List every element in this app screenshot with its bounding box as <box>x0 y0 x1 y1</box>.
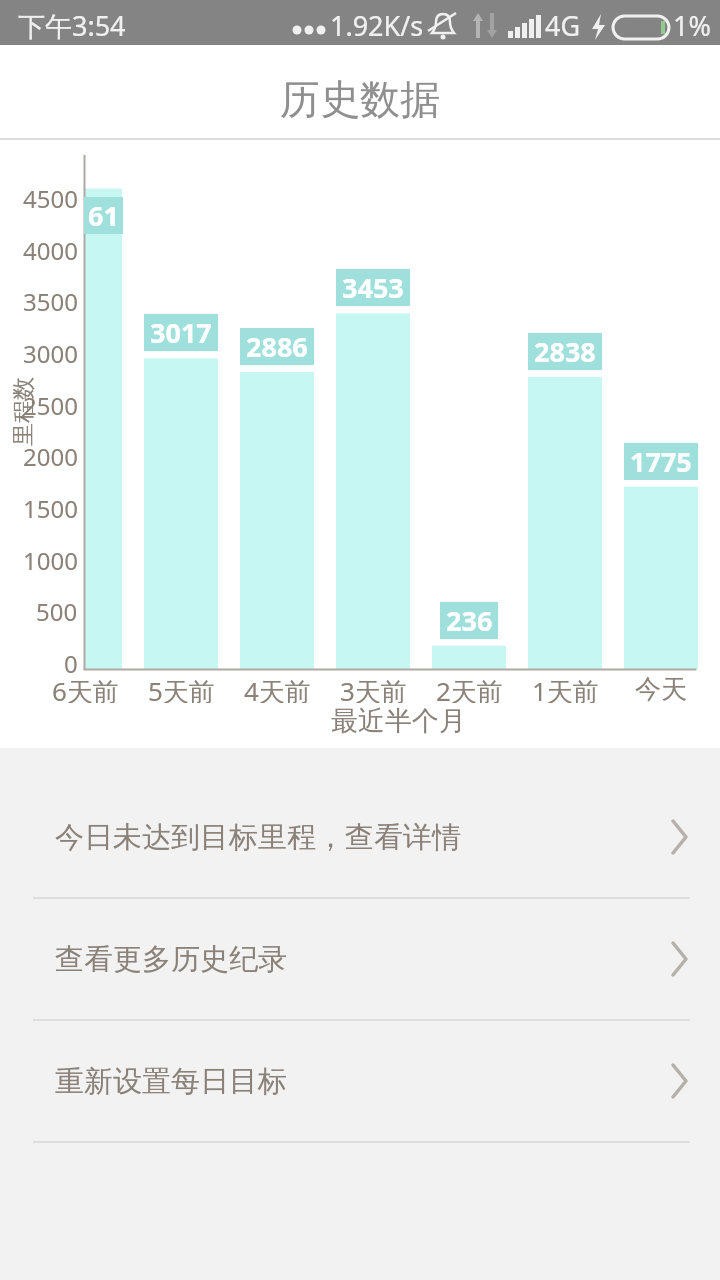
staticText: 3453 <box>342 269 404 306</box>
staticText: 2500 <box>23 389 78 419</box>
staticText: 61 <box>88 197 119 234</box>
staticText: 1500 <box>23 492 78 522</box>
staticText: 2000 <box>23 440 78 470</box>
staticText: 5天前 <box>148 673 215 703</box>
staticText: 1000 <box>23 544 78 574</box>
staticText: 6天前 <box>52 673 119 703</box>
button[interactable]: 重新设置每日目标 <box>0 1021 720 1141</box>
staticText: 4G <box>545 7 581 44</box>
staticText: 2天前 <box>436 673 503 703</box>
staticText: 4500 <box>23 182 78 212</box>
staticText: 3000 <box>23 337 78 367</box>
staticText: 3500 <box>23 285 78 315</box>
staticText: 1775 <box>630 443 692 480</box>
staticText: 下午3:54 <box>18 7 126 44</box>
staticText: 历史数据 <box>280 74 440 124</box>
staticText: 重新设置每日目标 <box>55 1063 287 1100</box>
staticText: 3017 <box>150 314 212 351</box>
staticText: 2886 <box>246 328 308 365</box>
staticText: 查看更多历史纪录 <box>55 941 287 978</box>
staticText: 1.92K/s <box>330 7 424 44</box>
staticText: 最近半个月 <box>331 704 466 736</box>
staticText: 1天前 <box>532 673 599 703</box>
staticText: 4000 <box>23 234 78 264</box>
staticText: 今日未达到目标里程，查看详情 <box>55 819 461 856</box>
button[interactable]: 今日未达到目标里程，查看详情 <box>0 777 720 897</box>
staticText: 500 <box>36 595 78 625</box>
staticText: 1% <box>673 7 711 44</box>
staticText: 今天 <box>635 673 687 703</box>
staticText: 2838 <box>534 333 596 370</box>
staticText: 0 <box>64 647 78 677</box>
staticText: 里程数 <box>9 377 38 446</box>
staticText: 3天前 <box>340 673 407 703</box>
staticText: 236 <box>446 602 493 639</box>
staticText: 4天前 <box>244 673 311 703</box>
button[interactable]: 查看更多历史纪录 <box>0 899 720 1019</box>
